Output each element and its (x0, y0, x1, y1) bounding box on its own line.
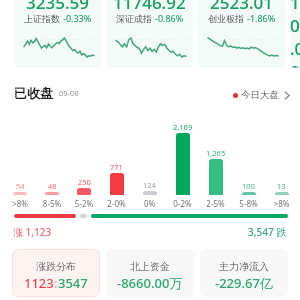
staticText: 北上资金 (130, 260, 170, 273)
other: Open market overview (284, 91, 290, 100)
staticText: 8-5% (36, 198, 68, 209)
staticText: 深证成指 (116, 13, 152, 24)
staticText: 0% (133, 198, 166, 209)
staticText: 1000.00 (290, 0, 300, 68)
staticText: 2523.01 (210, 0, 273, 14)
staticText: >8% (4, 198, 36, 209)
staticText: 124 (143, 180, 156, 190)
staticText: 13 (277, 181, 286, 191)
button[interactable]: 北上资金 (106, 249, 194, 297)
staticText: 今日大盘 (241, 89, 279, 101)
staticText: 主力净流入 (219, 260, 269, 273)
staticText: 5-8% (232, 198, 265, 209)
staticText: 涨跌分布 (36, 260, 76, 273)
staticText: 上证指数 (24, 13, 60, 24)
staticText: 48 (48, 181, 57, 191)
button[interactable]: 今日大盘 (233, 89, 290, 101)
button[interactable]: 主力净流入 (200, 249, 288, 297)
staticText: >8% (265, 198, 298, 209)
button[interactable]: 涨跌分布 (12, 249, 100, 297)
button[interactable]: 2523.01 (198, 0, 285, 68)
staticText: -8660.00万 (117, 274, 183, 292)
button[interactable]: 11746.92 (106, 0, 193, 68)
staticText: 2,169 (173, 122, 193, 132)
staticText: 1123 (24, 274, 54, 292)
staticText: 涨 1,123 (13, 225, 52, 239)
staticText: 3235.59 (26, 0, 89, 14)
staticText: 2-0% (100, 198, 133, 209)
staticText: 771 (110, 162, 123, 172)
staticText: 250 (78, 177, 91, 187)
staticText: -0.33% (63, 12, 92, 24)
staticText: -1.86% (247, 12, 276, 24)
staticText: -0.86% (155, 12, 184, 24)
staticText: 11746.92 (113, 0, 186, 14)
button[interactable]: 1000.00 (290, 0, 300, 68)
staticText: 0-2% (166, 198, 199, 209)
staticText: -229.67亿 (215, 274, 273, 292)
staticText: : (54, 274, 58, 292)
button[interactable]: 3235.59 (14, 0, 101, 68)
staticText: 创业板指 (208, 13, 244, 24)
staticText: 3547 (58, 274, 88, 292)
staticText: 100 (242, 181, 255, 191)
staticText: 5-2% (68, 198, 100, 209)
staticText: 09-08 (59, 88, 79, 98)
staticText: 3,547 跌 (248, 225, 287, 239)
staticText: 54 (16, 181, 25, 191)
staticText: 2-5% (199, 198, 232, 209)
staticText: 1,265 (206, 148, 226, 158)
staticText: 已收盘 (14, 85, 53, 101)
